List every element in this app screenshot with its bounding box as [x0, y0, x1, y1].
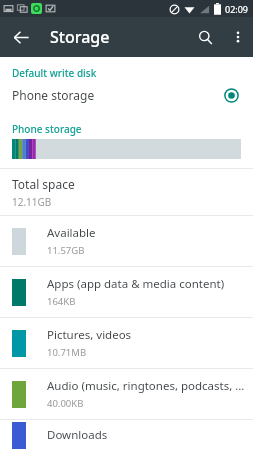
button[interactable]: Audio (music, ringtones, podcasts, etc.): [0, 369, 253, 419]
staticText: Storage: [50, 26, 110, 48]
staticText: Default write disk: [12, 66, 97, 80]
staticText: Phone storage: [12, 122, 82, 136]
staticText: Audio (music, ringtones, podcasts, etc.): [47, 378, 247, 394]
button[interactable]: More options: [223, 22, 253, 52]
staticText: 40.00KB: [47, 397, 84, 410]
button[interactable]: Total space: [0, 169, 253, 215]
button[interactable]: Apps (app data & media content): [0, 267, 253, 317]
staticText: Phone storage: [12, 87, 224, 103]
button[interactable]: Available: [0, 216, 253, 266]
button[interactable]: Downloads: [0, 420, 253, 450]
staticText: 12.11GB: [12, 195, 52, 209]
button[interactable]: Phone storage: [0, 80, 253, 110]
staticText: 164KB: [47, 295, 76, 308]
button[interactable]: Search: [187, 19, 223, 55]
staticText: 10.71MB: [47, 346, 87, 359]
staticText: 02:09: [225, 3, 249, 15]
staticText: Available: [47, 225, 96, 241]
button[interactable]: Pictures, videos: [0, 318, 253, 368]
staticText: Apps (app data & media content): [47, 276, 225, 292]
button[interactable]: Back: [5, 21, 37, 53]
staticText: Downloads: [47, 427, 108, 443]
staticText: 11.57GB: [47, 244, 85, 257]
staticText: Total space: [12, 176, 75, 192]
staticText: Pictures, videos: [47, 327, 132, 343]
